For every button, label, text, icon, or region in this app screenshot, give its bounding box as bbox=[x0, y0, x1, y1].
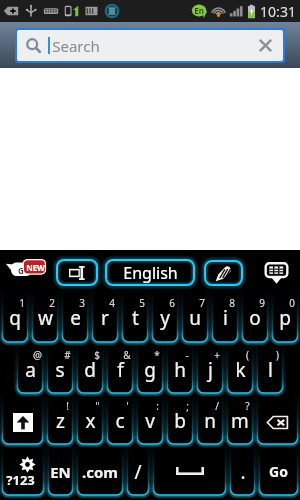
other: Shift bbox=[13, 413, 33, 432]
staticText: ?123 bbox=[6, 471, 35, 489]
staticText: d bbox=[84, 357, 96, 383]
button[interactable]: w bbox=[30, 295, 60, 347]
button[interactable]: u bbox=[180, 295, 210, 347]
staticText: / bbox=[134, 459, 142, 485]
button[interactable]: c bbox=[105, 398, 135, 449]
staticText: 10:31 bbox=[260, 2, 296, 21]
staticText: w bbox=[38, 305, 53, 331]
staticText: 2 bbox=[49, 296, 55, 310]
button[interactable]: Settings bbox=[0, 449, 46, 500]
staticText: z bbox=[56, 408, 65, 434]
button[interactable]: Search bbox=[17, 30, 283, 61]
staticText: 7 bbox=[199, 296, 205, 310]
staticText: ( bbox=[246, 348, 249, 362]
button[interactable]: / bbox=[125, 449, 151, 500]
button[interactable]: j bbox=[195, 347, 225, 398]
staticText: 6 bbox=[169, 296, 175, 310]
staticText: y bbox=[160, 305, 170, 331]
button[interactable]: Resize keyboard bbox=[55, 258, 99, 287]
staticText: g bbox=[144, 357, 156, 383]
button[interactable]: Handwriting bbox=[203, 259, 244, 287]
button[interactable]: p bbox=[270, 295, 300, 347]
staticText: @ bbox=[33, 348, 42, 362]
other: Settings bbox=[19, 456, 36, 473]
button[interactable]: i bbox=[210, 295, 240, 347]
staticText: EN bbox=[50, 462, 71, 482]
staticText: r bbox=[101, 305, 109, 331]
button[interactable]: . bbox=[228, 449, 257, 500]
button[interactable]: Space bbox=[151, 449, 228, 500]
staticText: NEW bbox=[26, 262, 45, 273]
staticText: G bbox=[18, 265, 24, 276]
button[interactable]: h bbox=[165, 347, 195, 398]
staticText: h bbox=[174, 357, 186, 383]
staticText: 4 bbox=[109, 296, 115, 310]
staticText: t bbox=[132, 305, 139, 331]
button[interactable]: x bbox=[75, 398, 105, 449]
button[interactable]: Hide keyboard bbox=[261, 261, 291, 285]
button[interactable]: v bbox=[135, 398, 165, 449]
staticText: p bbox=[279, 305, 291, 331]
button[interactable]: s bbox=[45, 347, 75, 398]
button[interactable]: Go bbox=[257, 449, 300, 500]
button[interactable]: Backspace bbox=[255, 398, 300, 449]
staticText: 3 bbox=[79, 296, 85, 310]
button[interactable]: What's new bbox=[5, 258, 47, 280]
button[interactable]: m bbox=[225, 398, 255, 449]
button[interactable]: a bbox=[15, 347, 45, 398]
button[interactable]: y bbox=[150, 295, 180, 347]
button[interactable]: t bbox=[120, 295, 150, 347]
staticText: " bbox=[95, 399, 100, 413]
other: Space bbox=[176, 467, 204, 475]
staticText: + bbox=[214, 348, 220, 362]
button[interactable]: English bbox=[104, 258, 196, 287]
staticText: * bbox=[154, 348, 160, 362]
button[interactable]: r bbox=[90, 295, 120, 347]
staticText: $ bbox=[94, 348, 100, 362]
staticText: / bbox=[215, 399, 219, 413]
staticText: l bbox=[268, 357, 273, 383]
staticText: ; bbox=[186, 399, 189, 413]
staticText: . bbox=[240, 459, 246, 485]
staticText: Go bbox=[269, 462, 288, 481]
staticText: o bbox=[249, 305, 261, 331]
button[interactable]: g bbox=[135, 347, 165, 398]
staticText: & bbox=[123, 348, 131, 362]
button[interactable]: k bbox=[225, 347, 255, 398]
staticText: 5 bbox=[139, 296, 145, 310]
button[interactable]: EN bbox=[46, 449, 75, 500]
staticText: q bbox=[9, 305, 21, 331]
button[interactable]: q bbox=[0, 295, 30, 347]
staticText: English bbox=[123, 262, 178, 284]
staticText: Search bbox=[52, 36, 100, 56]
staticText: 9 bbox=[259, 296, 265, 310]
button[interactable]: o bbox=[240, 295, 270, 347]
staticText: j bbox=[208, 357, 213, 383]
staticText: s bbox=[55, 357, 65, 383]
button[interactable]: n bbox=[195, 398, 225, 449]
button[interactable]: e bbox=[60, 295, 90, 347]
staticText: .com bbox=[82, 462, 118, 482]
staticText: 1 bbox=[19, 296, 25, 310]
staticText: 0 bbox=[289, 296, 295, 310]
staticText: e bbox=[70, 305, 81, 331]
button[interactable]: Shift bbox=[0, 398, 45, 449]
staticText: v bbox=[145, 408, 155, 434]
staticText: ! bbox=[66, 399, 69, 413]
other: Backspace bbox=[267, 416, 288, 429]
button[interactable]: b bbox=[165, 398, 195, 449]
staticText: m bbox=[231, 408, 249, 434]
button[interactable]: d bbox=[75, 347, 105, 398]
button[interactable]: f bbox=[105, 347, 135, 398]
staticText: k bbox=[235, 357, 246, 383]
button[interactable]: .com bbox=[75, 449, 125, 500]
button[interactable]: l bbox=[255, 347, 285, 398]
staticText: # bbox=[64, 348, 71, 362]
staticText: a bbox=[25, 357, 36, 383]
staticText: i bbox=[223, 305, 228, 331]
staticText: f bbox=[117, 357, 124, 383]
staticText: : bbox=[156, 399, 159, 413]
button[interactable]: z bbox=[45, 398, 75, 449]
staticText: u bbox=[189, 305, 201, 331]
other: Clear bbox=[258, 38, 273, 53]
